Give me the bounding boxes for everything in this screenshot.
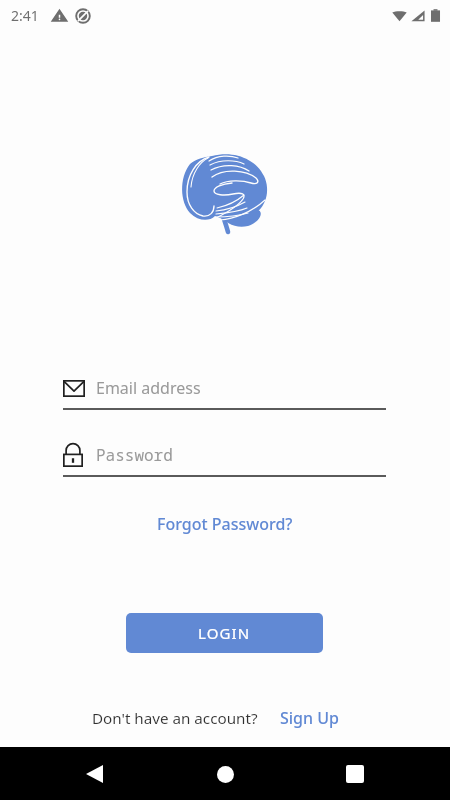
other: Sync disabled bbox=[75, 8, 91, 24]
other: Warning bbox=[52, 8, 67, 23]
button[interactable]: Sign Up bbox=[276, 703, 343, 733]
staticText: Don't have an account? bbox=[92, 708, 258, 729]
staticText: LOGIN bbox=[198, 623, 251, 643]
staticText: Forgot Password? bbox=[157, 513, 293, 535]
staticText: Sign Up bbox=[280, 707, 339, 729]
staticText: Password bbox=[96, 444, 173, 466]
button[interactable]: Forgot Password? bbox=[149, 508, 301, 540]
button[interactable]: Home bbox=[203, 752, 247, 796]
button[interactable]: Back bbox=[72, 752, 116, 796]
button[interactable]: Email address bbox=[63, 377, 386, 399]
staticText: 2:41 bbox=[11, 6, 39, 25]
button[interactable]: Recents bbox=[333, 752, 377, 796]
button[interactable]: Password bbox=[63, 443, 386, 467]
staticText: Email address bbox=[96, 377, 201, 399]
button[interactable]: LOGIN bbox=[126, 613, 323, 653]
